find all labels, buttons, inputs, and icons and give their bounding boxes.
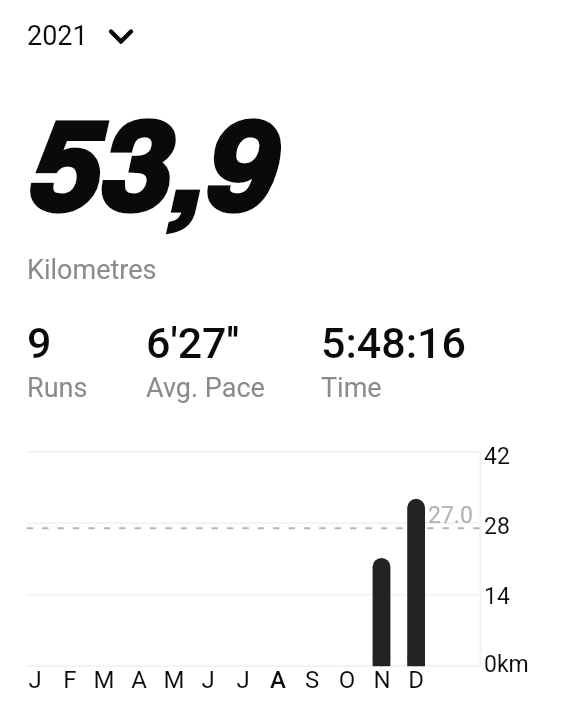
button[interactable]: 9 (27, 318, 88, 404)
staticText: A (124, 666, 154, 694)
staticText: Runs (27, 372, 88, 404)
other: Change year (108, 26, 134, 46)
staticText: O (332, 666, 362, 694)
staticText: 28 (484, 513, 510, 540)
staticText: M (89, 666, 119, 694)
staticText: 53,9 (30, 72, 277, 248)
staticText: N (367, 666, 397, 694)
staticText: Kilometres (27, 254, 157, 286)
staticText: 53,9 (30, 72, 277, 248)
staticText: M (159, 666, 189, 694)
button[interactable]: 6'27'' (146, 318, 265, 404)
staticText: S (297, 666, 327, 694)
staticText: J (20, 666, 50, 694)
staticText: 9 (27, 318, 52, 368)
button[interactable]: 2021 (27, 20, 134, 52)
staticText: 42 (484, 443, 510, 470)
staticText: A (263, 666, 293, 694)
staticText: 5:48:16 (321, 318, 466, 368)
staticText: 14 (484, 583, 510, 610)
staticText: D (401, 666, 431, 694)
staticText: 27.0 (428, 502, 473, 529)
staticText: Time (321, 372, 382, 404)
staticText: 0km (484, 651, 529, 678)
staticText: 6'27'' (146, 318, 240, 368)
staticText: F (55, 666, 85, 694)
staticText: 2021 (27, 20, 88, 52)
staticText: Avg. Pace (146, 372, 265, 404)
staticText: J (193, 666, 223, 694)
staticText: J (228, 666, 258, 694)
button[interactable]: 5:48:16 (321, 318, 466, 404)
